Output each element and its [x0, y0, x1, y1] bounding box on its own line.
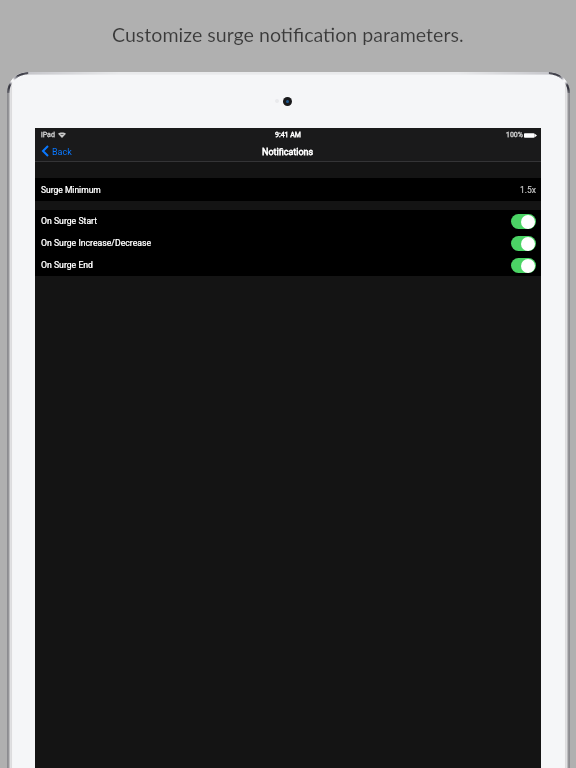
staticText: Notifications — [262, 147, 314, 158]
button[interactable]: On Surge Start — [35, 210, 541, 232]
staticText: 9:41 AM — [275, 131, 301, 139]
staticText: 1.5x — [520, 185, 537, 195]
button[interactable]: Surge Minimum — [35, 178, 541, 201]
button[interactable]: On Surge End — [35, 254, 541, 276]
staticText: On Surge Start — [41, 216, 98, 226]
other: On Surge Start toggle, on — [511, 214, 536, 229]
staticText: iPad — [41, 131, 55, 139]
other: On Surge End toggle, on — [511, 258, 536, 273]
staticText: Surge Minimum — [41, 185, 101, 195]
staticText: Back — [52, 147, 72, 158]
button[interactable]: Back — [35, 143, 82, 161]
staticText: On Surge End — [41, 260, 94, 270]
staticText: On Surge Increase/Decrease — [41, 238, 152, 248]
staticText: Customize surge notification parameters. — [112, 23, 464, 47]
button[interactable]: On Surge Increase/Decrease — [35, 232, 541, 254]
staticText: 100% — [506, 131, 523, 139]
other: On Surge Increase/Decrease toggle, on — [511, 236, 536, 251]
